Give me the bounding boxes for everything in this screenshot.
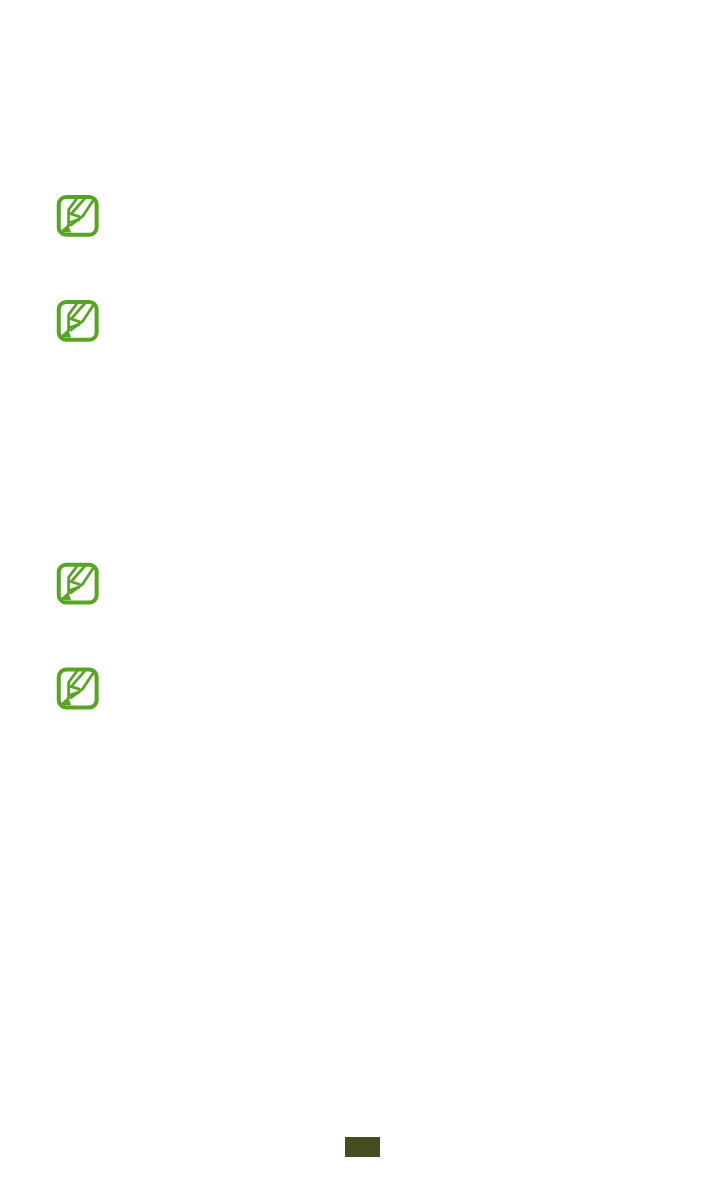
- button[interactable]: Note 3: [56, 562, 100, 606]
- button[interactable]: Note 1: [56, 194, 100, 238]
- button[interactable]: Note 2: [56, 299, 100, 343]
- button[interactable]: Note 4: [56, 667, 100, 711]
